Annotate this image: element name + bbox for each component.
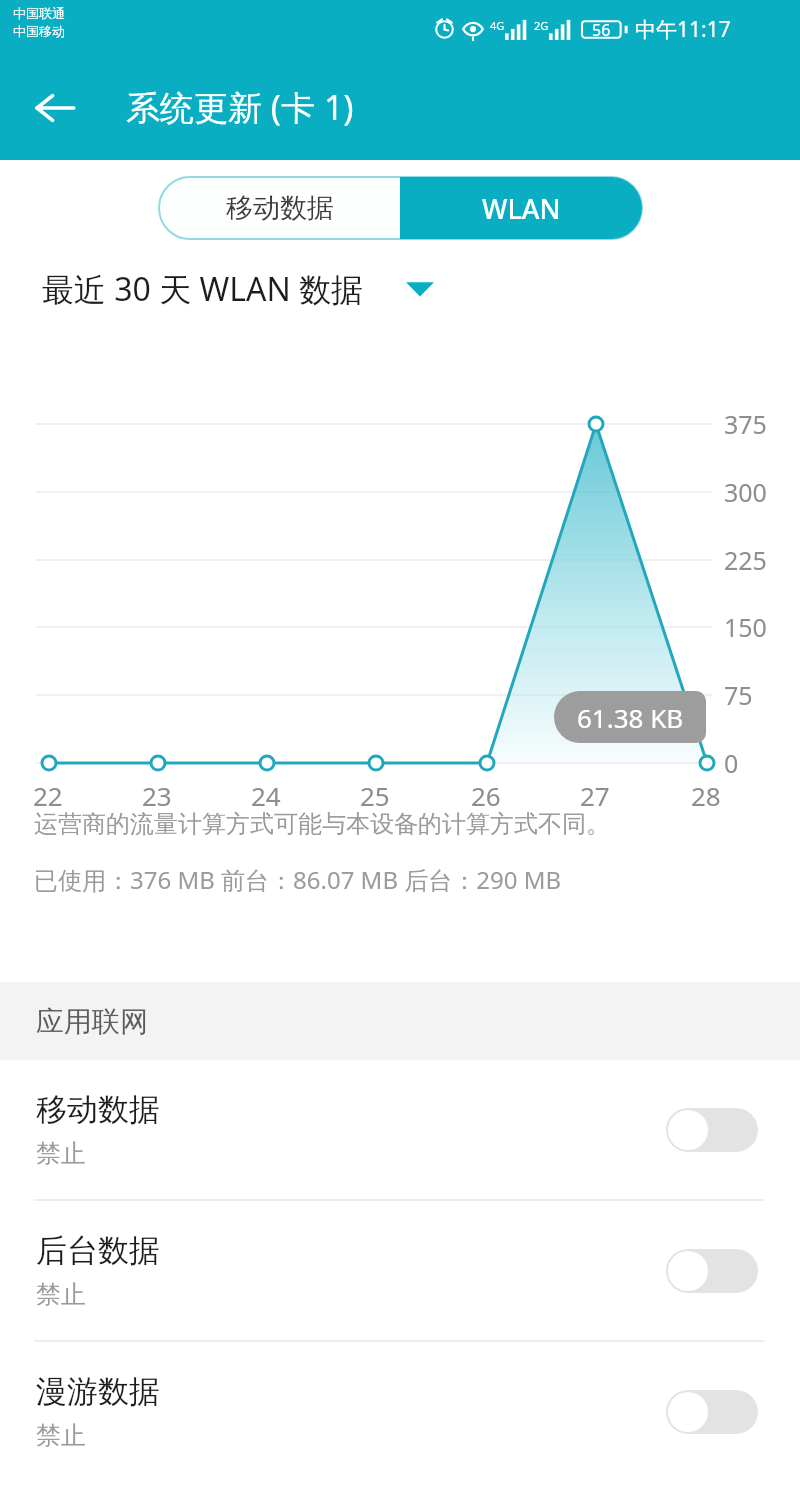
staticText: 中国联通 bbox=[13, 5, 65, 21]
staticText: 75 bbox=[724, 678, 753, 712]
staticText: 应用联网 bbox=[36, 1004, 148, 1039]
button[interactable]: 后台数据 开关 bbox=[666, 1249, 758, 1293]
staticText: 375 bbox=[724, 407, 767, 441]
button[interactable]: WLAN bbox=[400, 177, 642, 239]
staticText: 移动数据 bbox=[226, 191, 334, 225]
button[interactable]: 移动数据 bbox=[159, 177, 400, 239]
staticText: WLAN bbox=[482, 190, 561, 227]
staticText: 漫游数据 bbox=[36, 1372, 160, 1411]
staticText: 56 bbox=[592, 19, 611, 41]
staticText: 26 bbox=[471, 778, 501, 813]
staticText: 24 bbox=[251, 778, 281, 813]
button[interactable]: 返回 bbox=[24, 77, 86, 139]
button[interactable]: 移动数据 开关 bbox=[666, 1108, 758, 1152]
staticText: 最近 30 天 WLAN 数据 bbox=[42, 267, 364, 311]
staticText: 23 bbox=[142, 778, 172, 813]
staticText: 27 bbox=[580, 778, 610, 813]
staticText: 移动数据 bbox=[36, 1090, 160, 1129]
staticText: 禁止 bbox=[36, 1420, 86, 1451]
staticText: 中午11:17 bbox=[635, 15, 731, 44]
button[interactable]: 漫游数据 开关 bbox=[666, 1390, 758, 1434]
button[interactable]: 后台数据 bbox=[0, 1201, 800, 1340]
staticText: 22 bbox=[33, 778, 63, 813]
staticText: 运营商的流量计算方式可能与本设备的计算方式不同。 bbox=[34, 809, 610, 839]
staticText: 2G bbox=[534, 18, 549, 33]
staticText: 150 bbox=[724, 610, 767, 644]
button[interactable]: 最近 30 天 WLAN 数据 bbox=[0, 261, 800, 317]
staticText: 61.38 KB bbox=[577, 700, 684, 735]
staticText: 300 bbox=[724, 475, 767, 509]
staticText: 中国移动 bbox=[13, 23, 65, 39]
button[interactable]: 移动数据 bbox=[0, 1060, 800, 1199]
staticText: 28 bbox=[691, 778, 721, 813]
staticText: 禁止 bbox=[36, 1138, 86, 1169]
button[interactable]: 漫游数据 bbox=[0, 1342, 800, 1481]
staticText: 已使用：376 MB 前台：86.07 MB 后台：290 MB bbox=[34, 863, 562, 896]
staticText: 禁止 bbox=[36, 1279, 86, 1310]
staticText: 25 bbox=[360, 778, 390, 813]
staticText: 225 bbox=[724, 543, 767, 577]
staticText: 系统更新 (卡 1) bbox=[126, 84, 354, 130]
staticText: 后台数据 bbox=[36, 1231, 160, 1270]
staticText: 4G bbox=[490, 18, 505, 33]
staticText: 0 bbox=[724, 746, 739, 780]
